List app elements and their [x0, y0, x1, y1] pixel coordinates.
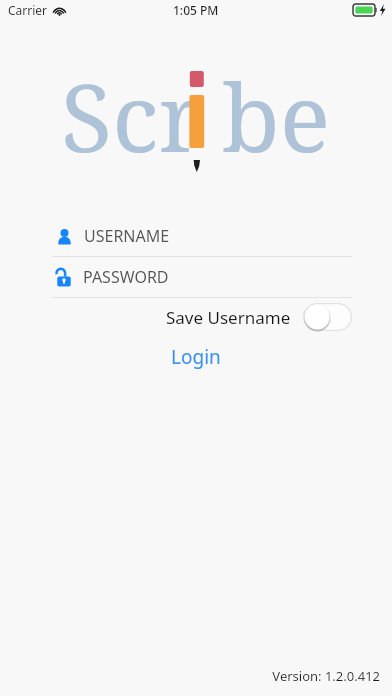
- staticText: Carrier: [8, 2, 48, 18]
- button[interactable]: Username field: [0, 216, 392, 256]
- staticText: be: [222, 52, 331, 180]
- staticText: Login: [171, 344, 221, 370]
- staticText: Version: 1.2.0.412: [272, 667, 380, 685]
- staticText: PASSWORD: [83, 266, 169, 288]
- button[interactable]: Save Username toggle: [303, 303, 352, 331]
- staticText: USERNAME: [84, 225, 170, 247]
- staticText: 1:05 PM: [173, 2, 219, 18]
- button[interactable]: Password field: [0, 257, 392, 297]
- button[interactable]: Login: [0, 342, 392, 372]
- staticText: Scr: [61, 52, 203, 180]
- staticText: Save Username: [166, 306, 291, 329]
